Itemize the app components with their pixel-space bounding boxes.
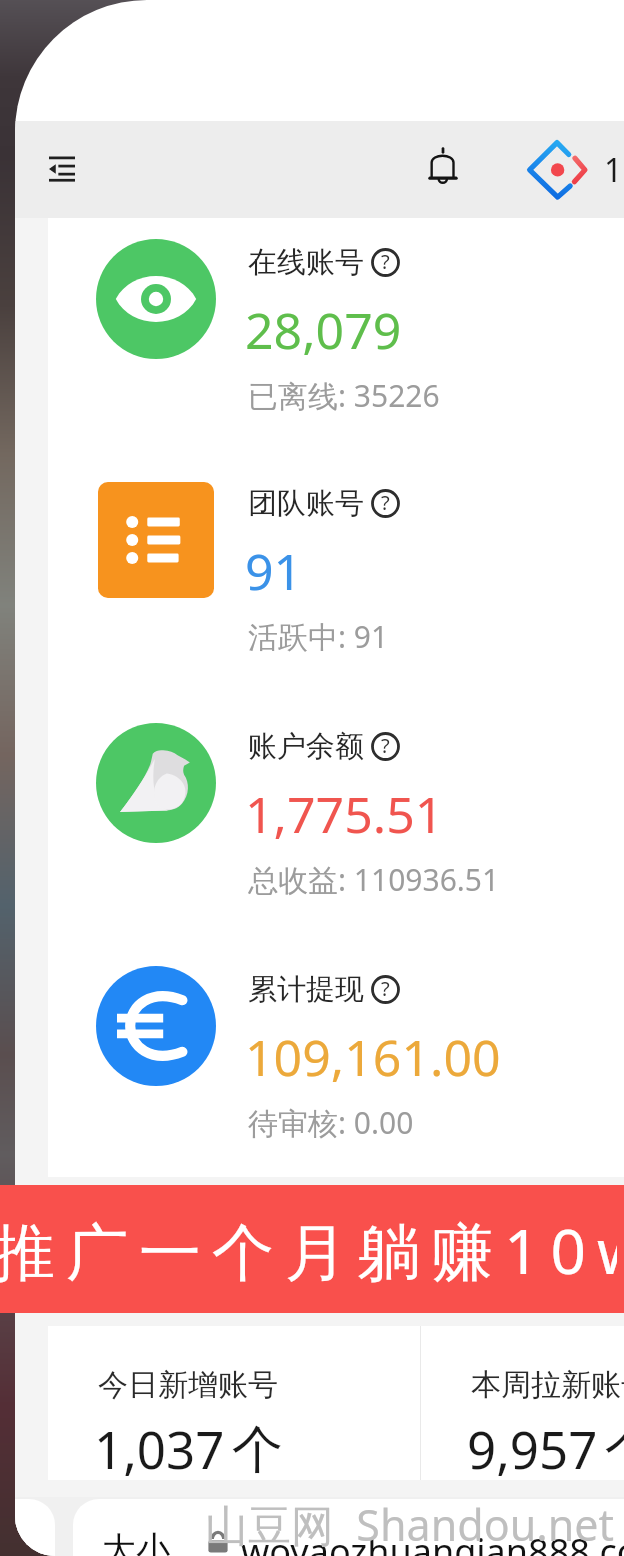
staticText: 待审核: 0.00 xyxy=(248,1102,414,1143)
staticText: 9,957 xyxy=(467,1414,598,1483)
staticText: 团队账号 xyxy=(248,485,364,522)
staticText: 109,161.00 xyxy=(245,1023,501,1091)
staticText: 推广一个月躺赚10w的方法 xyxy=(0,1208,617,1293)
staticText: 在线账号 xyxy=(248,244,364,281)
staticText: 账户余额 xyxy=(248,728,364,765)
staticText: 91 xyxy=(245,537,303,605)
staticText: 山豆网 Shandou.net xyxy=(205,1495,615,1554)
button[interactable]: 本周拉新账号 xyxy=(421,1326,624,1395)
button[interactable]: Menu xyxy=(36,143,88,195)
staticText: 本周拉新账号 xyxy=(471,1366,624,1404)
button[interactable]: 账户余额 xyxy=(48,702,624,943)
staticText: 大小 xyxy=(102,1528,170,1556)
button[interactable]: App logo xyxy=(522,135,592,205)
staticText: 28,079 xyxy=(245,296,402,364)
staticText: ? xyxy=(381,248,390,275)
button[interactable]: 今日新增账号 xyxy=(48,1326,420,1395)
staticText: 总收益: 110936.51 xyxy=(248,859,500,900)
button[interactable]: Tabs xyxy=(15,1499,55,1556)
staticText: 15 xyxy=(604,148,624,192)
staticText: 已离线: 35226 xyxy=(248,375,440,416)
staticText: 个 xyxy=(232,1418,283,1482)
button[interactable]: 在线账号 xyxy=(48,218,624,459)
staticText: 活跃中: 91 xyxy=(248,616,389,657)
button[interactable]: 推广一个月躺赚10w的方法 xyxy=(0,1185,624,1313)
staticText: 累计提现 xyxy=(248,971,364,1008)
staticText: 1,775.51 xyxy=(245,780,444,848)
button[interactable]: 团队账号 xyxy=(48,459,624,700)
staticText: woyaozhuanqian888.com xyxy=(241,1527,624,1556)
staticText: 个 xyxy=(605,1418,624,1482)
staticText: ? xyxy=(381,975,390,1002)
staticText: 1,037 xyxy=(94,1414,225,1483)
button[interactable]: 大小 xyxy=(73,1499,624,1556)
button[interactable]: Notifications xyxy=(417,140,469,192)
staticText: 今日新增账号 xyxy=(98,1366,278,1404)
staticText: ? xyxy=(381,732,390,759)
button[interactable]: 累计提现 xyxy=(48,945,624,1186)
staticText: ? xyxy=(381,489,390,516)
